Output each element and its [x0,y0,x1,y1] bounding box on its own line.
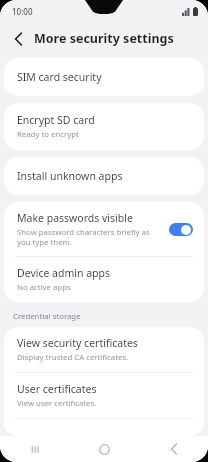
button[interactable]: Home [70,436,139,462]
button[interactable]: Back [139,436,208,462]
button[interactable]: View security certificates [4,327,204,372]
button[interactable]: Recent apps [0,436,70,462]
staticText: View user certificates. [17,398,97,409]
staticText: Credential storage [13,311,81,322]
staticText: View security certificates [17,336,138,350]
button[interactable]: Encrypt SD card [4,103,204,150]
button[interactable]: Install unknown apps [4,157,204,195]
staticText: 10:00 [12,6,33,17]
staticText: Ready to encrypt [17,129,79,140]
staticText: No active apps [17,282,71,293]
staticText: Display trusted CA certificates. [17,352,129,363]
staticText: SIM card security [17,70,102,84]
button[interactable]: User certificates [4,373,204,418]
staticText: Device admin apps [17,266,111,280]
staticText: Install unknown apps [17,169,123,183]
button[interactable]: Make passwords visible [4,202,204,256]
staticText: User certificates [17,382,97,396]
staticText: More security settings [34,30,174,47]
staticText: Show password characters briefly as you … [17,227,163,247]
button[interactable]: Back [8,29,28,49]
button[interactable]: SIM card security [4,58,204,96]
staticText: Encrypt SD card [17,113,95,127]
button[interactable]: Device admin apps [4,257,204,302]
button[interactable]: Make passwords visible toggle [169,223,193,236]
staticText: Make passwords visible [17,211,133,225]
